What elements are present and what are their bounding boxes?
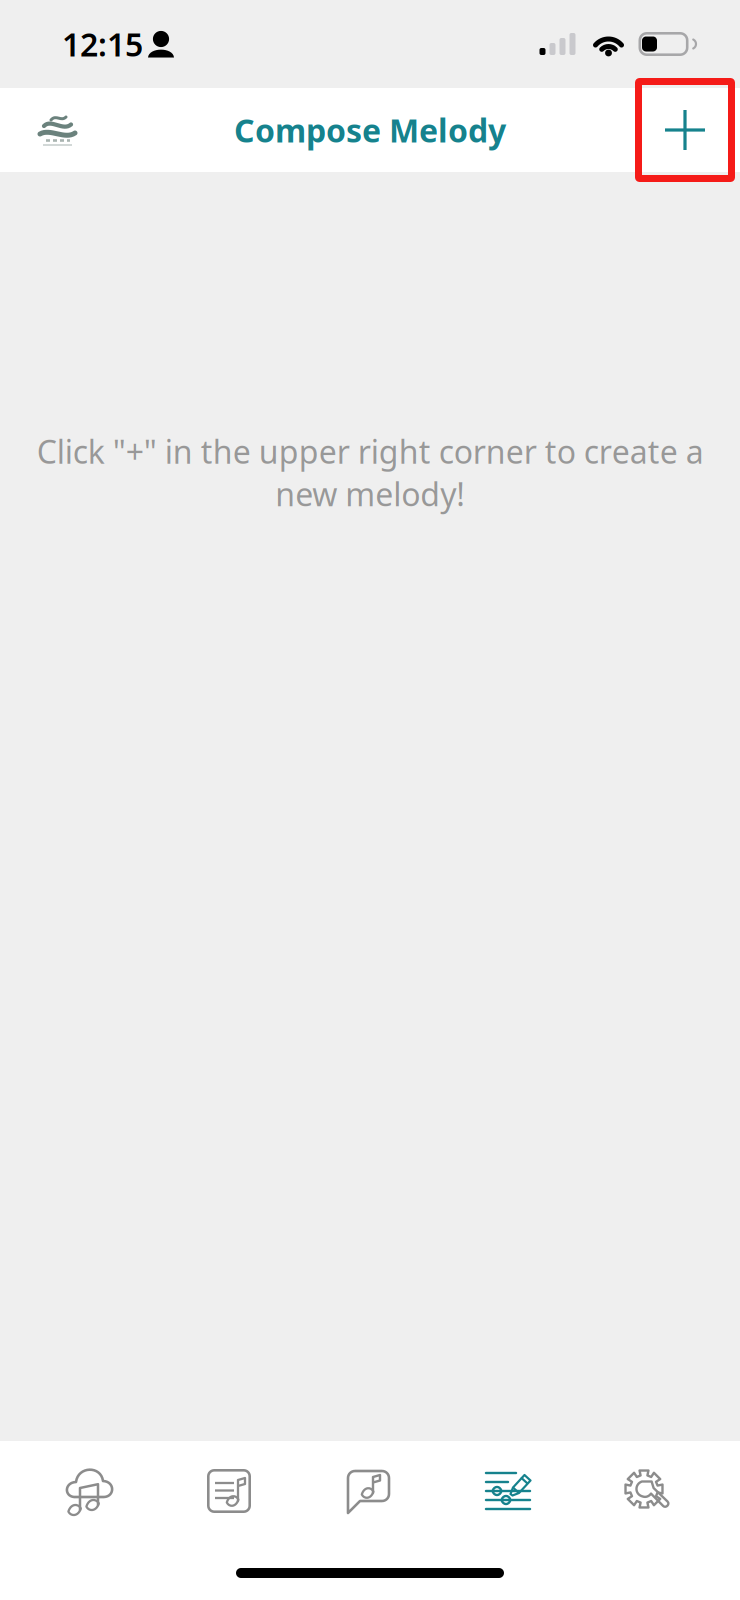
staticText: Compose Melody [234, 109, 506, 151]
button[interactable]: Cloud library [19, 1441, 159, 1541]
staticText: Click "+" in the upper right corner to c… [36, 430, 703, 515]
button[interactable]: Settings [579, 1441, 719, 1541]
staticText: 12:15 [62, 23, 143, 65]
button[interactable]: Messages [299, 1441, 439, 1541]
button[interactable]: Sheet music [159, 1441, 299, 1541]
button[interactable]: App home [14, 88, 100, 172]
button[interactable]: Create new melody [634, 88, 736, 172]
button[interactable]: Compose melody [439, 1441, 579, 1541]
